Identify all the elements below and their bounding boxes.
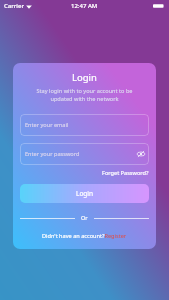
staticText: Stay login with to your account to be up… — [13, 87, 156, 103]
staticText: Didn't have an account?Register — [42, 232, 127, 240]
button[interactable]: Login — [20, 184, 149, 203]
staticText: Login — [72, 71, 97, 84]
staticText: 12:47 AM — [71, 2, 98, 10]
staticText: Carrier — [4, 2, 24, 10]
button[interactable]: Enter your password — [20, 143, 149, 165]
button[interactable]: Toggle password visibility — [137, 150, 145, 158]
staticText: Enter your password — [25, 150, 80, 158]
staticText: Forget Password? — [102, 169, 149, 177]
button[interactable]: Enter your email — [20, 114, 149, 136]
button[interactable]: Forget Password? — [102, 169, 149, 177]
staticText: Enter your email — [25, 121, 69, 129]
staticText: Login — [76, 189, 94, 198]
button[interactable]: Didn't have an account?Register — [42, 232, 127, 240]
staticText: Or — [81, 214, 88, 222]
